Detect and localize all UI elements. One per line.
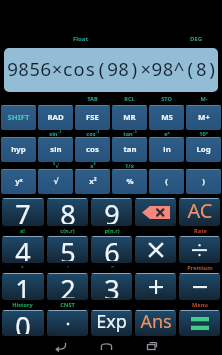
staticText: 9 [104,198,120,224]
staticText: 0 [15,310,31,334]
staticText: % [126,176,134,187]
staticText: eˣ [164,130,170,137]
staticText: ³√ [53,162,59,169]
button[interactable]: MS [149,105,184,130]
staticText: SHIFT [7,112,30,123]
button[interactable]: SHIFT [1,105,36,130]
button[interactable]: 2 [47,273,88,300]
staticText: c(n,r) [60,227,75,235]
staticText: 10ˣ [199,130,208,137]
staticText: 1/x [125,162,134,169]
staticText: ) [202,176,205,187]
staticText: ′ [67,264,69,272]
staticText: tan [123,144,137,155]
staticText: CNST [60,301,75,309]
staticText: MR [123,112,136,123]
button[interactable]: RAD [38,105,73,130]
staticText: Rate [194,227,207,235]
staticText: 2 [60,273,76,298]
staticText: 9856×cos(98)×98^(8) [7,56,218,81]
staticText: M+ [198,112,210,123]
button[interactable]: √ [38,169,73,194]
button[interactable]: 5 [47,236,88,263]
button[interactable]: ( [149,169,184,194]
staticText: x! [20,227,25,235]
staticText: ° [21,264,24,272]
staticText: RAD [47,112,64,123]
button[interactable]: Multiply [135,236,176,263]
button[interactable]: tan [112,137,147,162]
staticText: 6 [104,236,120,261]
button[interactable]: hyp [1,137,36,162]
staticText: √ [53,177,59,186]
button[interactable]: % [112,169,147,194]
button[interactable]: M+ [186,105,221,130]
button[interactable]: Recents [142,337,162,355]
button[interactable]: 0 [2,310,44,336]
button[interactable]: AC [179,198,220,226]
button[interactable]: Minus [179,273,220,300]
staticText: MS [161,112,173,123]
staticText: ″ [111,264,114,272]
staticText: Log [196,144,211,155]
staticText: Menu [192,301,208,309]
staticText: sin⁻¹ [49,130,62,137]
staticText: cos [86,144,99,155]
staticText: AC [187,198,213,224]
button[interactable]: Equals [179,310,220,336]
staticText: cos⁻¹ [86,130,100,137]
staticText: 8 [60,198,76,224]
staticText: History [12,301,33,309]
staticText: STO [161,95,172,103]
button[interactable]: MR [112,105,147,130]
button[interactable]: 4 [2,236,44,263]
staticText: RCL [124,95,135,103]
staticText: ( [165,176,168,187]
staticText: TAB [87,95,98,103]
button[interactable]: sin [38,137,73,162]
button[interactable]: 3 [91,273,132,300]
staticText: tan⁻¹ [123,130,137,137]
button[interactable]: 7 [2,198,44,226]
staticText: sin [50,144,62,155]
staticText: 7 [15,198,31,224]
staticText: Exp [96,310,127,334]
staticText: x³ [90,162,96,169]
staticText: x² [89,176,97,187]
staticText: hyp [11,144,26,155]
button[interactable]: ) [186,169,221,194]
staticText: DEG [190,35,203,43]
button[interactable]: Plus [135,273,176,300]
staticText: Float [73,35,89,43]
button[interactable]: 6 [91,236,132,263]
staticText: 4 [15,236,31,261]
button[interactable]: Back [50,337,70,355]
staticText: ln [163,144,171,155]
button[interactable]: Ans [135,310,176,336]
button[interactable]: Backspace [135,198,176,226]
button[interactable]: 8 [47,198,88,226]
staticText: p(n,r) [104,227,120,235]
button[interactable]: Decimal point [47,310,88,336]
staticText: 1 [15,273,31,298]
staticText: 3 [104,273,120,298]
button[interactable]: Log [186,137,221,162]
staticText: 5 [60,236,76,261]
button[interactable]: FSE [75,105,110,130]
button[interactable]: Home [96,337,116,355]
button[interactable]: 9 [91,198,132,226]
staticText: Premium [187,264,213,272]
button[interactable]: ln [149,137,184,162]
button[interactable]: 1 [2,273,44,300]
staticText: yˣ [15,176,23,187]
staticText: M- [200,95,208,103]
staticText: FSE [86,112,99,123]
staticText: Ans [140,310,172,334]
button[interactable]: Divide [179,236,220,263]
button[interactable]: x² [75,169,110,194]
button[interactable]: cos [75,137,110,162]
button[interactable]: Exp [91,310,132,336]
button[interactable]: yˣ [1,169,36,194]
